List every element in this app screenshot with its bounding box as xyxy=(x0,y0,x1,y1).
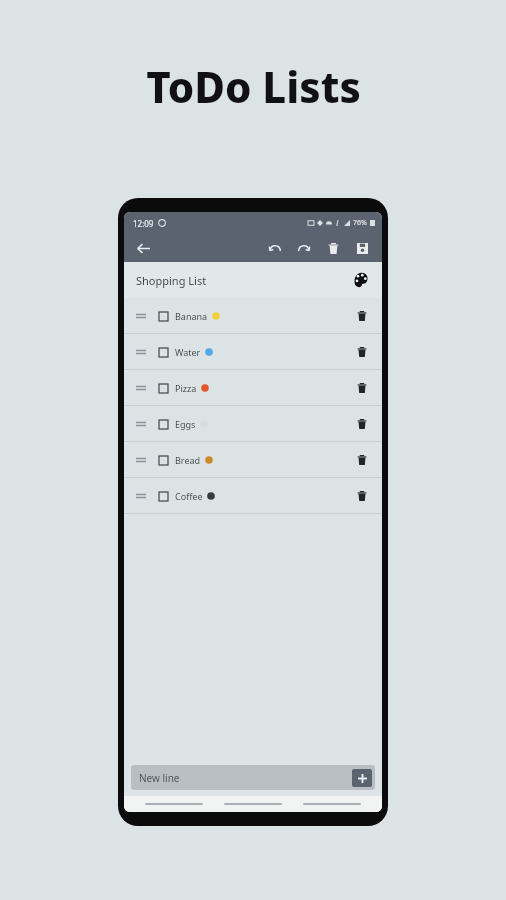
staticText: Coffee xyxy=(175,490,203,502)
button[interactable]: Add item xyxy=(352,769,372,787)
button[interactable]: Delete Water xyxy=(352,342,372,362)
button[interactable]: Navigation xyxy=(224,803,282,805)
staticText: Banana xyxy=(175,310,208,322)
staticText: ToDo Lists xyxy=(146,58,361,115)
button[interactable]: Reorder Bread xyxy=(124,442,382,477)
button[interactable]: Delete Coffee xyxy=(352,486,372,506)
button[interactable]: Delete Pizza xyxy=(352,378,372,398)
button[interactable]: Navigation xyxy=(303,803,361,805)
button[interactable]: Navigation xyxy=(145,803,203,805)
button[interactable]: Reorder Banana xyxy=(133,308,149,324)
button[interactable]: Undo xyxy=(264,237,286,259)
button[interactable]: Toggle Bread xyxy=(155,452,171,468)
button[interactable]: Toggle Water xyxy=(155,344,171,360)
button[interactable]: Delete Eggs xyxy=(352,414,372,434)
button[interactable]: Theme palette xyxy=(350,269,372,291)
button[interactable]: Delete xyxy=(322,237,344,259)
button[interactable]: Reorder Coffee xyxy=(133,488,149,504)
staticText: 12:09 xyxy=(133,218,154,229)
staticText: Pizza xyxy=(175,382,197,394)
button[interactable]: Toggle Coffee xyxy=(155,488,171,504)
button[interactable]: Toggle Banana xyxy=(155,308,171,324)
button[interactable]: Delete Bread xyxy=(352,450,372,470)
button[interactable]: Reorder Eggs xyxy=(124,406,382,441)
button[interactable]: Reorder Banana xyxy=(124,298,382,333)
button[interactable]: New line xyxy=(131,765,375,790)
staticText: Eggs xyxy=(175,418,196,430)
button[interactable]: Toggle Pizza xyxy=(155,380,171,396)
button[interactable]: Reorder Water xyxy=(133,344,149,360)
button[interactable]: Reorder Pizza xyxy=(133,380,149,396)
button[interactable]: Delete Banana xyxy=(352,306,372,326)
button[interactable]: Toggle Eggs xyxy=(155,416,171,432)
staticText: 76% xyxy=(353,218,367,228)
button[interactable]: Back xyxy=(133,238,153,258)
staticText: New line xyxy=(139,771,180,785)
staticText: Water xyxy=(175,346,201,358)
button[interactable]: Reorder Eggs xyxy=(133,416,149,432)
button[interactable]: Reorder Water xyxy=(124,334,382,369)
button[interactable]: Reorder Coffee xyxy=(124,478,382,513)
button[interactable]: Reorder Pizza xyxy=(124,370,382,405)
staticText: Bread xyxy=(175,454,201,466)
staticText: Shopping List xyxy=(136,273,207,288)
button[interactable]: Reorder Bread xyxy=(133,452,149,468)
button[interactable]: Save xyxy=(351,237,373,259)
button[interactable]: Redo xyxy=(293,237,315,259)
